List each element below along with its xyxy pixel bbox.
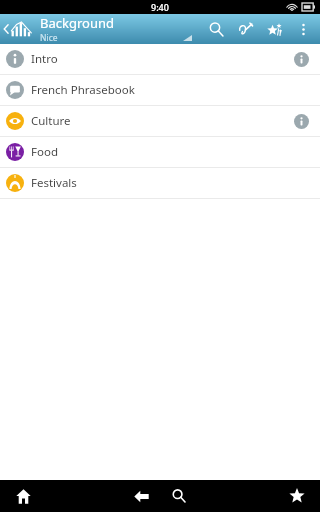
button[interactable]: Intro [0,44,320,74]
button[interactable]: French Phrasebook [0,75,320,105]
staticText: Nice [40,32,58,44]
button[interactable]: Favorites [260,14,289,44]
button[interactable]: Favorites [284,483,310,509]
button[interactable]: Food [0,137,320,167]
button[interactable]: Back [128,483,154,509]
button[interactable]: More options [289,14,318,44]
staticText: Food [31,144,58,160]
button[interactable]: Info about Culture [288,108,314,134]
button[interactable]: Home [10,483,36,509]
staticText: 9:40 [151,1,169,13]
staticText: Intro [31,51,58,67]
button[interactable]: Edit [231,14,260,44]
staticText: Culture [31,113,71,129]
button[interactable]: Navigate up [0,14,34,44]
button[interactable]: Culture [0,106,320,136]
button[interactable]: Festivals [0,168,320,198]
staticText: French Phrasebook [31,82,135,98]
button[interactable]: Info about Intro [288,46,314,72]
button[interactable]: Search [202,14,231,44]
button[interactable]: Search [166,483,192,509]
staticText: Festivals [31,175,77,191]
staticText: Background [40,14,114,32]
